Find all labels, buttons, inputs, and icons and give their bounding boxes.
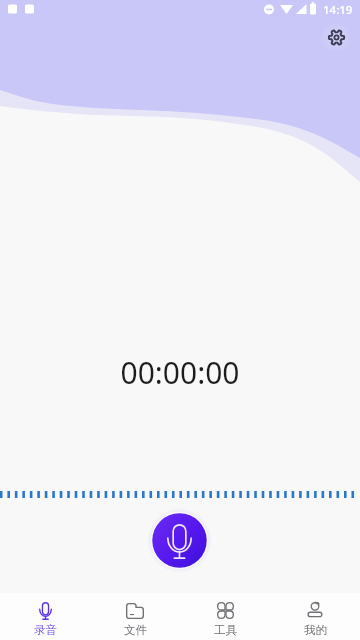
button[interactable]: Settings bbox=[320, 21, 352, 53]
button[interactable]: Record bbox=[147, 508, 212, 573]
button[interactable]: 我的 bbox=[270, 593, 360, 640]
button[interactable]: 工具 bbox=[180, 593, 270, 640]
staticText: 我的 bbox=[304, 623, 327, 637]
button[interactable]: 录音 bbox=[0, 593, 90, 640]
staticText: 文件 bbox=[124, 623, 147, 637]
staticText: 14:19 bbox=[323, 2, 353, 18]
staticText: 工具 bbox=[214, 623, 237, 637]
staticText: 录音 bbox=[34, 623, 57, 637]
staticText: 00:00:00 bbox=[120, 352, 240, 393]
button[interactable]: 文件 bbox=[90, 593, 180, 640]
